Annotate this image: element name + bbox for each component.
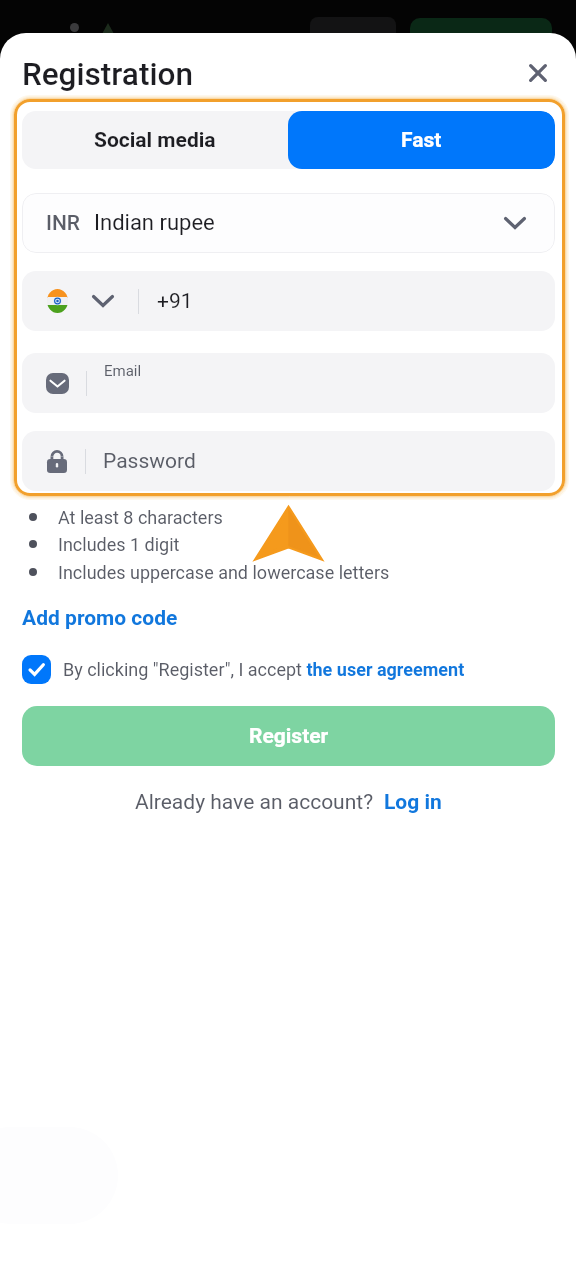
staticText: At least 8 characters — [58, 507, 223, 528]
staticText: By clicking "Register", I accept the use… — [63, 659, 465, 680]
button[interactable]: Password — [22, 431, 555, 491]
staticText: Register — [249, 724, 329, 749]
staticText: Fast — [401, 128, 442, 153]
button[interactable]: Email — [22, 353, 555, 413]
staticText: INR — [46, 211, 80, 236]
staticText: Email — [104, 362, 142, 380]
staticText: Includes 1 digit — [58, 534, 180, 555]
button[interactable]: Registration — [22, 56, 193, 93]
staticText: Social media — [94, 128, 216, 153]
button[interactable]: Fast — [288, 111, 555, 169]
button[interactable]: Log in — [384, 790, 442, 815]
staticText: Already have an account? — [135, 790, 374, 815]
staticText: +91 — [157, 289, 193, 314]
staticText: Add promo code — [22, 606, 178, 631]
staticText: Password — [103, 449, 196, 474]
button[interactable]: By clicking "Register", I accept the use… — [22, 655, 465, 684]
button[interactable]: INR — [22, 193, 555, 253]
button[interactable]: Social media — [22, 111, 288, 169]
staticText: Registration — [22, 56, 193, 93]
staticText: Indian rupee — [94, 210, 215, 236]
button[interactable]: Register — [22, 706, 555, 766]
button[interactable]: Close — [515, 50, 560, 95]
button[interactable]: +91 — [22, 271, 555, 331]
staticText: Includes uppercase and lowercase letters — [58, 562, 390, 583]
button[interactable]: Add promo code — [22, 606, 178, 631]
staticText: Log in — [384, 790, 442, 815]
